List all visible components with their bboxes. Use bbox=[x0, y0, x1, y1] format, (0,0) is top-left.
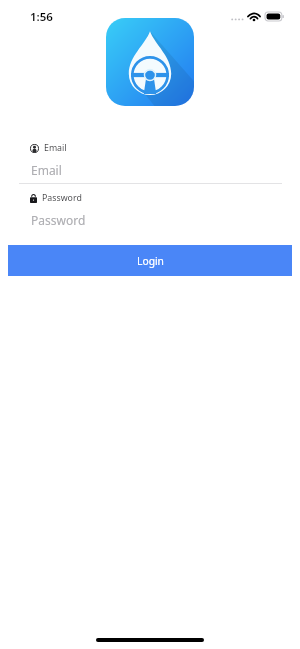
button[interactable]: Login bbox=[8, 245, 292, 276]
staticText: 1:56 bbox=[30, 9, 53, 25]
other: App logo bbox=[106, 18, 194, 106]
staticText: Email bbox=[44, 142, 67, 154]
button[interactable]: Email bbox=[0, 160, 300, 184]
button[interactable]: Password bbox=[0, 210, 300, 234]
staticText: Password bbox=[31, 212, 86, 228]
staticText: Password bbox=[42, 192, 82, 204]
staticText: Login bbox=[137, 254, 164, 268]
staticText: Email bbox=[31, 162, 62, 178]
